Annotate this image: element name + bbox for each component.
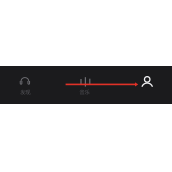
button[interactable]: 我的	[115, 66, 172, 104]
button[interactable]: 发现	[0, 66, 57, 104]
button[interactable]: 音乐	[57, 66, 115, 104]
staticText: 发现	[20, 89, 30, 96]
staticText: 音乐	[79, 89, 89, 96]
